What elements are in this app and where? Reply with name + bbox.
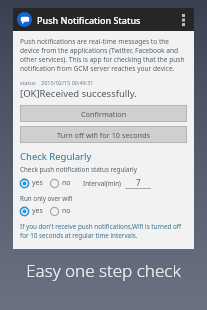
staticText: Interval(min) [83, 179, 121, 188]
staticText: Turn off wifi for 10 seconds [57, 130, 150, 140]
staticText: Check push notification status regularly [20, 165, 137, 174]
staticText: no [62, 178, 71, 188]
staticText: Confirmation [81, 109, 127, 119]
button[interactable]: yes [20, 178, 43, 188]
staticText: Check Regularly [20, 150, 92, 163]
staticText: no [62, 206, 71, 216]
staticText: Push Notification Status [37, 14, 141, 26]
button[interactable]: More options [176, 8, 190, 31]
button[interactable]: Turn off wifi for 10 seconds [20, 126, 187, 143]
staticText: 2015/02/15 00:49:31 [41, 79, 94, 86]
staticText: Run only over wifi [20, 194, 73, 203]
button[interactable]: yes [20, 206, 43, 216]
staticText: 7 [136, 177, 141, 188]
staticText: [OK]Received successfully. [20, 87, 137, 100]
staticText: status [20, 79, 36, 86]
staticText: yes [32, 206, 43, 216]
staticText: Push notifications are real-time message… [20, 37, 187, 73]
staticText: If you don't receive push notifications,… [20, 222, 187, 240]
button[interactable]: no [50, 178, 71, 188]
button[interactable]: no [50, 206, 71, 216]
button[interactable]: 7 [125, 177, 151, 189]
staticText: Easy one step check [26, 259, 181, 282]
button[interactable]: Push Notification Status [13, 8, 194, 31]
button[interactable]: Confirmation [20, 105, 187, 122]
staticText: yes [32, 178, 43, 188]
